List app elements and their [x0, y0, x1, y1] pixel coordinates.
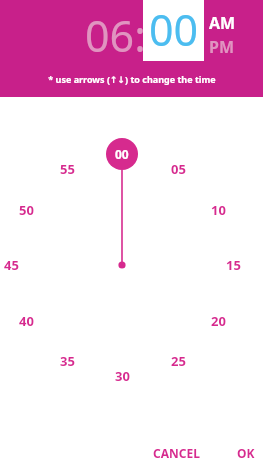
button[interactable]: 50 [11, 199, 41, 221]
staticText: AM [209, 12, 236, 34]
button[interactable]: 55 [52, 158, 82, 180]
button[interactable]: 00 [106, 138, 138, 170]
button[interactable]: 25 [163, 350, 193, 372]
staticText: 50 [19, 201, 34, 219]
staticText: 10 [211, 201, 226, 219]
staticText: 00 [149, 0, 199, 59]
button[interactable]: PM [209, 36, 253, 58]
button[interactable]: 10 [203, 199, 233, 221]
button[interactable]: 30 [107, 365, 137, 387]
staticText: 00 [115, 146, 129, 162]
staticText: 30 [115, 367, 130, 385]
staticText: 45 [4, 256, 19, 274]
button[interactable]: 45 [0, 254, 26, 276]
staticText: OK [237, 445, 255, 461]
button[interactable]: 20 [203, 310, 233, 332]
button[interactable]: OK [228, 440, 263, 465]
button[interactable]: 35 [52, 350, 82, 372]
button[interactable]: CANCEL [143, 440, 209, 465]
button[interactable]: 05 [163, 158, 193, 180]
staticText: * use arrows (↑↓) to change the time [48, 73, 216, 85]
staticText: CANCEL [153, 445, 200, 461]
staticText: 35 [60, 352, 75, 370]
button[interactable]: 06: [66, 6, 146, 60]
staticText: 55 [60, 160, 75, 178]
staticText: 15 [226, 256, 241, 274]
staticText: 40 [19, 312, 34, 330]
button[interactable]: 00 [143, 0, 204, 61]
staticText: PM [209, 36, 235, 58]
staticText: 06: [85, 6, 146, 60]
staticText: 05 [171, 160, 186, 178]
button[interactable]: 40 [11, 310, 41, 332]
button[interactable]: AM [209, 12, 253, 34]
button[interactable]: 15 [218, 254, 248, 276]
staticText: 25 [171, 352, 186, 370]
staticText: 20 [211, 312, 226, 330]
